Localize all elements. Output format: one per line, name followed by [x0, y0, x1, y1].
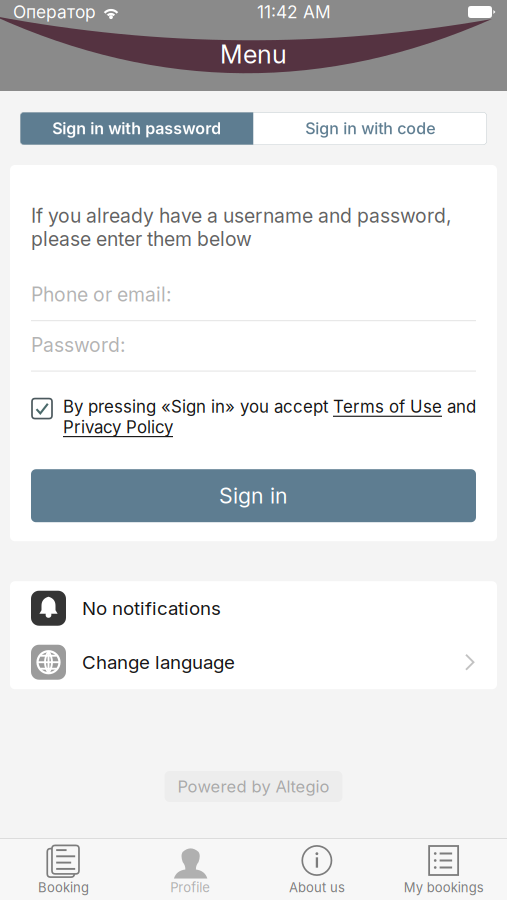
staticText: Booking — [38, 879, 89, 895]
button[interactable]: Change language — [10, 635, 497, 689]
button[interactable]: Booking — [0, 838, 127, 900]
staticText: By pressing «Sign in» you accept Terms o… — [63, 397, 476, 437]
staticText: Phone or email: — [31, 283, 172, 306]
staticText: Powered by Altegio — [177, 776, 329, 796]
button[interactable]: About us — [253, 838, 380, 900]
staticText: Menu — [220, 39, 287, 70]
button[interactable]: Profile — [127, 838, 254, 900]
staticText: If you already have a username and passw… — [31, 204, 452, 251]
button[interactable]: Sign in — [31, 469, 476, 522]
staticText: My bookings — [404, 879, 484, 895]
staticText: Sign in — [219, 483, 288, 509]
staticText: Sign in with password — [52, 119, 221, 138]
button[interactable]: Sign in with password — [20, 112, 253, 145]
button[interactable]: Sign in with code — [253, 112, 487, 145]
staticText: 11:42 AM — [257, 1, 331, 22]
staticText: Password: — [31, 333, 126, 357]
button[interactable]: No notifications — [10, 581, 497, 635]
staticText: Оператор — [13, 1, 96, 22]
button[interactable]: My bookings — [380, 838, 507, 900]
staticText: Change language — [82, 651, 235, 673]
staticText: No notifications — [82, 597, 221, 619]
staticText: Profile — [170, 879, 210, 895]
staticText: About us — [289, 879, 345, 895]
staticText: Sign in with code — [305, 119, 435, 138]
